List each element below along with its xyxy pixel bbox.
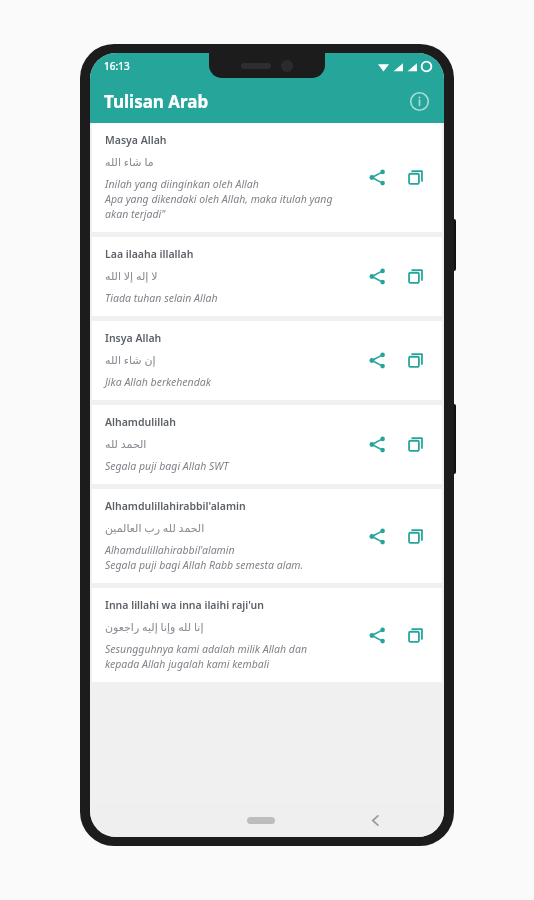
button[interactable]: Inna lillahi wa inna ilaihi raji'un [92,588,442,682]
staticText: الحمد لله رب العالمين [105,520,205,535]
button[interactable]: Back [364,809,386,831]
staticText: Insya Allah [105,331,162,345]
button[interactable]: Alhamdulillah [92,405,442,484]
button[interactable]: Share [360,427,394,461]
staticText: Segala puji bagi Allah Rabb semesta alam… [105,558,304,572]
button[interactable]: Copy [398,519,432,553]
button[interactable]: Share [360,618,394,652]
staticText: 16:13 [104,59,130,73]
button[interactable]: Insya Allah [92,321,442,400]
staticText: ما شاء الله [105,154,154,169]
staticText: Inna lillahi wa inna ilaihi raji'un [105,598,265,612]
button[interactable]: Copy [398,259,432,293]
staticText: Segala puji bagi Allah SWT [105,459,229,473]
button[interactable]: Share [360,343,394,377]
staticText: Laa ilaaha illallah [105,247,194,261]
staticText: الحمد لله [105,436,147,451]
staticText: Alhamdulillahirabbil'alamin [105,543,235,557]
button[interactable]: Copy [398,427,432,461]
staticText: akan terjadi" [105,207,166,221]
staticText: Sesungguhnya kami adalah milik Allah dan [105,642,307,656]
staticText: Jika Allah berkehendak [105,375,211,389]
staticText: إنا لله وإنا إليه راجعون [105,619,204,634]
button[interactable]: Share [360,160,394,194]
staticText: Alhamdulillah [105,415,176,429]
staticText: Alhamdulillahirabbil'alamin [105,499,246,513]
button[interactable]: Share [360,519,394,553]
staticText: إن شاء الله [105,352,156,367]
staticText: Apa yang dikendaki oleh Allah, maka itul… [105,192,333,206]
staticText: لا إله إلا الله [105,268,158,283]
staticText: kepada Allah jugalah kami kembali [105,657,270,671]
staticText: Inilah yang diinginkan oleh Allah [105,177,259,191]
button[interactable]: Info [404,86,434,116]
button[interactable]: Home [247,817,275,824]
button[interactable]: Copy [398,160,432,194]
button[interactable]: Masya Allah [92,123,442,232]
button[interactable]: Copy [398,618,432,652]
staticText: Tulisan Arab [104,90,209,113]
button[interactable]: Copy [398,343,432,377]
staticText: Masya Allah [105,133,167,147]
staticText: Tiada tuhan selain Allah [105,291,218,305]
button[interactable]: Laa ilaaha illallah [92,237,442,316]
button[interactable]: Share [360,259,394,293]
button[interactable]: Alhamdulillahirabbil'alamin [92,489,442,583]
